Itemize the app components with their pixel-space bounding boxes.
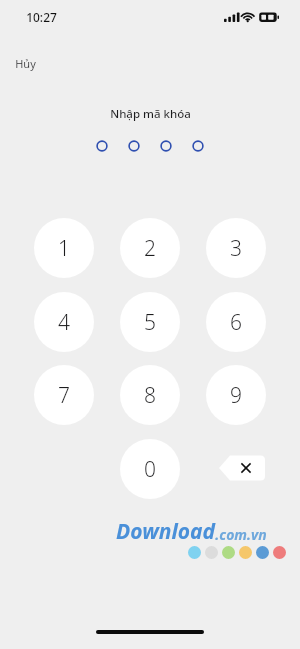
button[interactable]: 0 — [120, 439, 180, 499]
button[interactable]: 5 — [120, 292, 180, 352]
staticText: 0 — [144, 455, 156, 484]
button[interactable]: 9 — [206, 365, 266, 425]
staticText: 5 — [144, 308, 156, 337]
staticText: 2 — [144, 234, 156, 263]
button[interactable]: 7 — [34, 365, 94, 425]
staticText: .com.vn — [215, 525, 267, 544]
staticText: Nhập mã khóa — [110, 106, 191, 122]
button[interactable]: 2 — [120, 218, 180, 278]
button[interactable]: Hủy — [6, 52, 45, 75]
staticText: 6 — [230, 308, 242, 337]
staticText: 9 — [230, 381, 242, 410]
staticText: Download — [116, 517, 215, 546]
staticText: Hủy — [15, 56, 36, 71]
button[interactable]: 1 — [34, 218, 94, 278]
button[interactable]: 8 — [120, 365, 180, 425]
button[interactable]: Delete — [216, 452, 268, 484]
button[interactable]: 3 — [206, 218, 266, 278]
staticText: 1 — [58, 234, 70, 263]
button[interactable]: 4 — [34, 292, 94, 352]
staticText: 4 — [58, 308, 70, 337]
button[interactable]: 6 — [206, 292, 266, 352]
staticText: 7 — [58, 381, 70, 410]
staticText: 10:27 — [26, 9, 57, 25]
staticText: 3 — [230, 234, 242, 263]
staticText: 8 — [144, 381, 156, 410]
